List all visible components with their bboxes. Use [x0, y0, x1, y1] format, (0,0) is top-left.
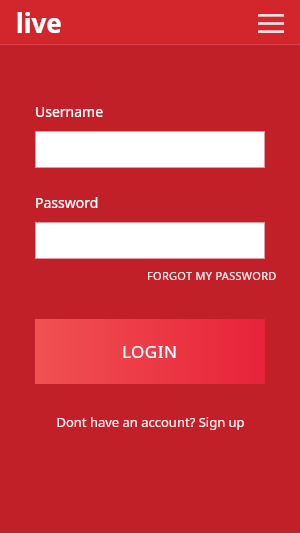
- staticText: FORGOT MY PASSWORD: [147, 268, 277, 283]
- staticText: LOGIN: [122, 340, 178, 363]
- staticText: Dont have an account? Sign up: [56, 413, 245, 431]
- button[interactable]: FORGOT MY PASSWORD: [145, 265, 279, 286]
- button[interactable]: Dont have an account? Sign up: [52, 409, 249, 435]
- button[interactable]: live: [15, 5, 63, 40]
- staticText: Username: [35, 102, 104, 121]
- button[interactable]: LOGIN: [35, 319, 265, 384]
- staticText: Password: [35, 193, 99, 212]
- staticText: live: [16, 5, 62, 40]
- button[interactable]: [35, 222, 265, 259]
- button[interactable]: [35, 131, 265, 168]
- button[interactable]: Menu: [253, 5, 289, 41]
